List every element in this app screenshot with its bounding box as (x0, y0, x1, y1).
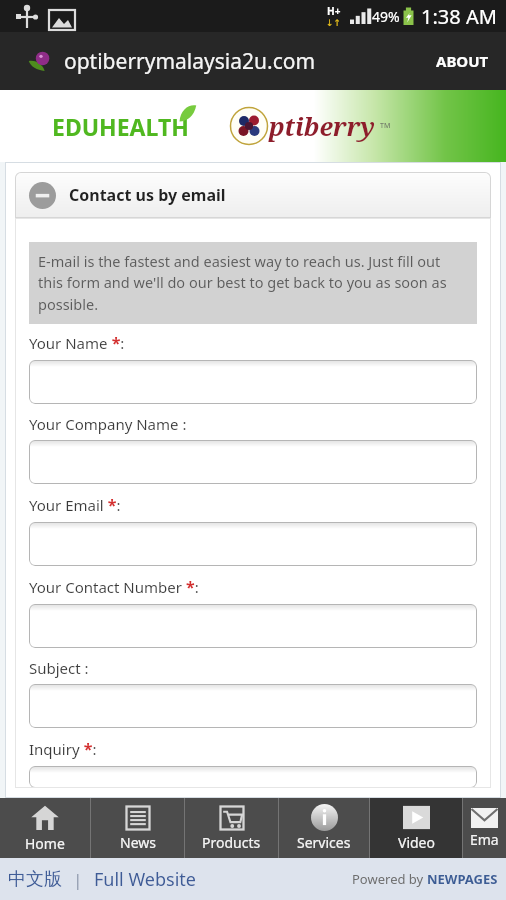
staticText: ABOUT (436, 51, 489, 71)
staticText: 1:38 AM (421, 3, 497, 30)
staticText: Inquiry *: (29, 738, 97, 760)
staticText: | (73, 868, 83, 891)
staticText: News (120, 833, 156, 852)
button[interactable] (29, 360, 477, 404)
staticText: optiberrymalaysia2u.com (64, 47, 316, 76)
staticText: Ema (470, 830, 499, 849)
button[interactable] (29, 766, 477, 788)
other: Email (471, 808, 498, 828)
other: Home (31, 804, 59, 832)
other: News (125, 805, 151, 831)
staticText: NEWPAGES (427, 870, 498, 888)
button[interactable] (29, 522, 477, 566)
staticText: H+ (327, 4, 341, 18)
other: Services (311, 804, 338, 831)
button[interactable]: Email (463, 798, 506, 858)
button[interactable]: Full Website (94, 867, 196, 892)
staticText: ↓↑ (326, 18, 342, 28)
staticText: Services (297, 833, 351, 852)
staticText: 49% (372, 7, 400, 26)
staticText: Your Company Name : (29, 414, 187, 434)
button[interactable]: Collapse (15, 172, 491, 218)
staticText: Your Email *: (29, 494, 121, 516)
staticText: Your Contact Number *: (29, 576, 199, 598)
staticText: TM (380, 121, 391, 131)
button[interactable] (29, 440, 477, 484)
staticText: 中文版 (8, 868, 62, 891)
button[interactable] (29, 604, 477, 648)
button[interactable]: ABOUT (419, 32, 506, 90)
button[interactable]: Home (0, 798, 90, 858)
other: Products (219, 805, 245, 831)
other: Collapse (29, 182, 56, 209)
button[interactable] (29, 684, 477, 728)
staticText: Powered by (352, 870, 427, 888)
staticText: Your Name *: (29, 332, 125, 354)
button[interactable]: Video (370, 798, 462, 858)
button[interactable]: 中文版 (8, 868, 62, 891)
staticText: ptiberry (269, 109, 376, 143)
other: Video (403, 804, 430, 831)
staticText: Video (398, 833, 435, 852)
button[interactable]: Products (185, 798, 278, 858)
staticText: Subject : (29, 658, 89, 678)
button[interactable]: News (91, 798, 184, 858)
staticText: E-mail is the fastest and easiest way to… (38, 251, 468, 315)
staticText: Full Website (94, 867, 196, 892)
staticText: Products (202, 833, 261, 852)
staticText: Home (25, 834, 65, 853)
button[interactable]: Services (279, 798, 369, 858)
staticText: EDUHEALTH (52, 111, 189, 142)
staticText: Contact us by email (69, 184, 226, 206)
